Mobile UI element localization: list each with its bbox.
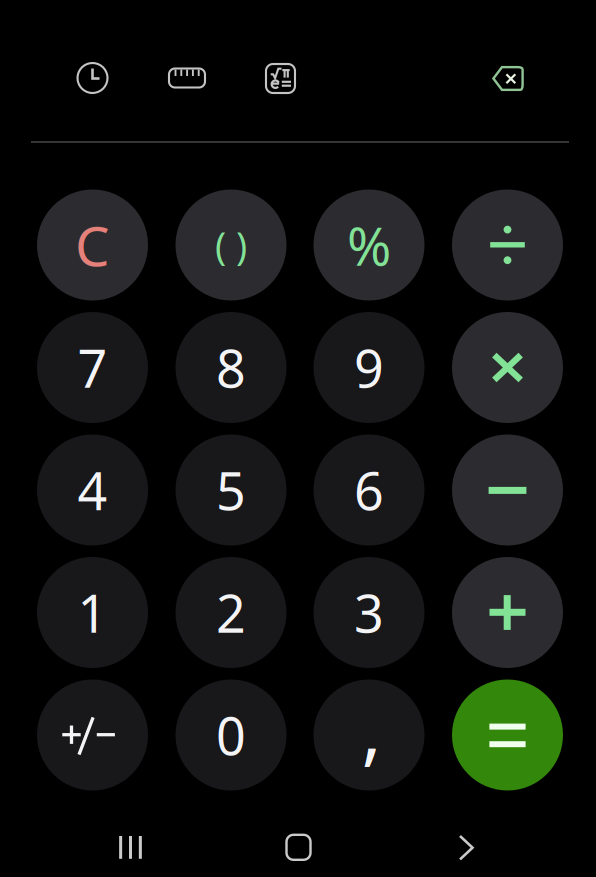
button[interactable]: Unit converter bbox=[163, 54, 211, 102]
staticText: 5 bbox=[216, 455, 246, 525]
staticText: C bbox=[75, 209, 110, 281]
button[interactable]: Toggle sign bbox=[37, 679, 148, 790]
button[interactable]: History bbox=[68, 54, 116, 102]
button[interactable]: Delete bbox=[484, 54, 532, 102]
button[interactable]: % bbox=[313, 189, 424, 300]
button[interactable]: Multiply bbox=[452, 312, 563, 423]
button[interactable]: 3 bbox=[313, 557, 424, 668]
button[interactable]: 5 bbox=[175, 434, 286, 545]
staticText: ( ) bbox=[215, 220, 247, 270]
staticText: 4 bbox=[77, 455, 107, 525]
staticText: 9 bbox=[354, 333, 384, 402]
button[interactable]: , bbox=[313, 679, 424, 790]
button[interactable]: Back bbox=[444, 826, 488, 870]
button[interactable]: 7 bbox=[37, 312, 148, 423]
button[interactable]: Home bbox=[276, 825, 320, 869]
button[interactable]: Add bbox=[452, 557, 563, 668]
staticText: 7 bbox=[77, 333, 107, 402]
button[interactable]: Recent apps bbox=[108, 826, 152, 870]
button[interactable]: 8 bbox=[175, 312, 286, 423]
button[interactable]: 2 bbox=[175, 557, 286, 668]
staticText: , bbox=[361, 678, 381, 778]
staticText: % bbox=[347, 210, 391, 280]
button[interactable]: 6 bbox=[313, 434, 424, 545]
button[interactable]: 9 bbox=[313, 312, 424, 423]
staticText: 3 bbox=[354, 578, 384, 647]
staticText: 0 bbox=[216, 700, 246, 770]
button[interactable]: Equals bbox=[452, 679, 563, 790]
button[interactable]: Divide bbox=[452, 189, 563, 300]
button[interactable]: 1 bbox=[37, 557, 148, 668]
button[interactable]: 4 bbox=[37, 434, 148, 545]
button[interactable]: 0 bbox=[175, 679, 286, 790]
button[interactable]: C bbox=[37, 189, 148, 300]
staticText: 8 bbox=[216, 333, 246, 402]
staticText: 2 bbox=[216, 578, 246, 647]
button[interactable]: Subtract bbox=[452, 434, 563, 545]
staticText: 1 bbox=[77, 578, 107, 647]
staticText: 6 bbox=[354, 455, 384, 525]
button[interactable]: ( ) bbox=[175, 189, 286, 300]
button[interactable]: Scientific calculator bbox=[256, 54, 304, 102]
